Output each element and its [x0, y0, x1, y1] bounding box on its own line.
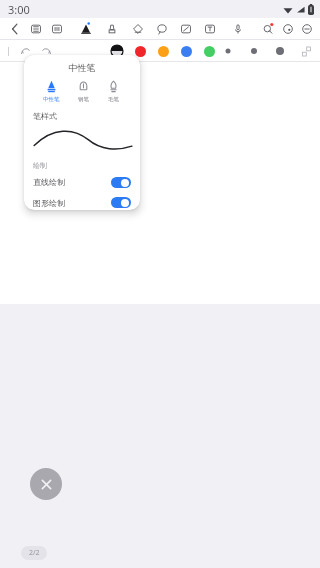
- button[interactable]: 钢笔: [74, 79, 93, 103]
- button[interactable]: Pages: [26, 19, 46, 39]
- staticText: 中性笔: [24, 62, 140, 73]
- button[interactable]: 图形绘制: [24, 195, 140, 210]
- button[interactable]: Back: [5, 19, 25, 39]
- button[interactable]: Text: [200, 19, 220, 39]
- button[interactable]: Color 4: [177, 42, 195, 60]
- button[interactable]: 2/2: [21, 546, 47, 560]
- button[interactable]: [30, 121, 134, 155]
- button[interactable]: More: [278, 19, 298, 39]
- button[interactable]: Size 3: [272, 43, 288, 59]
- staticText: 图形绘制: [33, 198, 65, 208]
- button[interactable]: Eraser: [128, 19, 148, 39]
- button[interactable]: 毛笔: [104, 79, 123, 103]
- staticText: 3:00: [8, 2, 30, 17]
- button[interactable]: Color 5: [200, 42, 218, 60]
- button[interactable]: Highlighter: [102, 19, 122, 39]
- button[interactable]: Close: [30, 468, 62, 500]
- button[interactable]: Color 1: [108, 42, 126, 60]
- button[interactable]: Undo: [16, 41, 36, 61]
- button[interactable]: Color 3: [154, 42, 172, 60]
- button[interactable]: Color 2: [131, 42, 149, 60]
- button[interactable]: Size 2: [246, 43, 262, 59]
- staticText: 直线绘制: [33, 177, 65, 187]
- staticText: 笔样式: [33, 111, 57, 121]
- button[interactable]: Expand: [298, 43, 314, 59]
- button[interactable]: Voice: [228, 19, 248, 39]
- button[interactable]: 中性笔: [41, 79, 62, 103]
- button[interactable]: Collapse: [297, 19, 317, 39]
- button[interactable]: Magic: [258, 19, 278, 39]
- staticText: 毛笔: [108, 96, 119, 103]
- staticText: 绘制: [33, 161, 47, 170]
- staticText: 中性笔: [43, 96, 60, 103]
- button[interactable]: Grid: [47, 19, 67, 39]
- button[interactable]: 直线绘制: [24, 174, 140, 190]
- button[interactable]: Redo: [36, 41, 56, 61]
- button[interactable]: Pen: [76, 19, 96, 39]
- button[interactable]: Image: [176, 19, 196, 39]
- staticText: 钢笔: [78, 96, 89, 103]
- button[interactable]: Size 1: [220, 43, 236, 59]
- button[interactable]: Lasso: [152, 19, 172, 39]
- staticText: 2/2: [29, 548, 40, 558]
